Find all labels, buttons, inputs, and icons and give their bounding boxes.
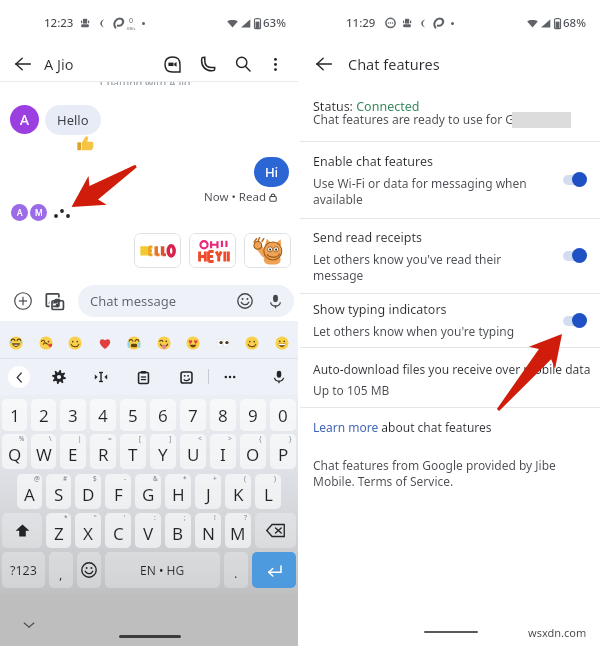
- button[interactable]: 7: [180, 399, 206, 431]
- staticText: #: [63, 474, 68, 483]
- button[interactable]: 3: [60, 399, 86, 431]
- button[interactable]: Clipboard: [133, 367, 153, 387]
- staticText: ?: [244, 513, 247, 522]
- button[interactable]: (: [225, 474, 251, 509]
- button[interactable]: A Jio: [44, 54, 74, 74]
- staticText: KB/s: [127, 26, 136, 31]
- button[interactable]: Text editing: [91, 367, 111, 387]
- button[interactable]: [: [120, 434, 146, 469]
- button[interactable]: >: [210, 434, 236, 469]
- button[interactable]: 1: [2, 399, 27, 431]
- button[interactable]: Chat message: [90, 285, 284, 317]
- button[interactable]: {: [240, 434, 266, 469]
- staticText: N: [202, 522, 215, 545]
- button[interactable]: More options: [261, 50, 289, 78]
- staticText: Auto-download files you receive over mob…: [313, 361, 591, 377]
- button[interactable]: -: [105, 474, 131, 509]
- button[interactable]: Gallery: [45, 292, 64, 311]
- button[interactable]: Emoji: [127, 336, 141, 350]
- button[interactable]: ': [105, 513, 131, 548]
- button[interactable]: Hide keyboard: [21, 617, 37, 633]
- button[interactable]: Hi: [265, 157, 278, 187]
- staticText: ": [94, 513, 97, 522]
- button[interactable]: EN • HG: [105, 552, 220, 588]
- button[interactable]: Emoji: [98, 336, 112, 350]
- button[interactable]: :: [135, 513, 161, 548]
- button[interactable]: %: [2, 434, 27, 469]
- staticText: (: [244, 474, 246, 483]
- button[interactable]: Emoji: [216, 336, 230, 350]
- button[interactable]: Voice input: [269, 367, 289, 387]
- button[interactable]: More: [220, 367, 240, 387]
- button[interactable]: Auto-download files you receive over mob…: [300, 347, 600, 407]
- button[interactable]: Settings: [49, 367, 69, 387]
- button[interactable]: Send read receipts: [300, 218, 600, 293]
- button[interactable]: Enable chat features: [300, 141, 600, 218]
- button[interactable]: Search: [229, 50, 257, 78]
- button[interactable]: Learn more about chat features: [300, 407, 600, 437]
- staticText: 7: [188, 404, 198, 427]
- staticText: Mobile. Terms of Service.: [313, 473, 454, 489]
- button[interactable]: =: [90, 434, 116, 469]
- staticText: *: [183, 474, 187, 483]
- button[interactable]: 8: [210, 399, 236, 431]
- button[interactable]: Emoji: [157, 336, 171, 350]
- button[interactable]: |: [60, 434, 86, 469]
- button[interactable]: Sticker: [134, 233, 181, 268]
- button[interactable]: 2: [31, 399, 56, 431]
- button[interactable]: <: [180, 434, 206, 469]
- button[interactable]: Emoji: [186, 336, 200, 350]
- button[interactable]: &: [135, 474, 161, 509]
- button[interactable]: Emoji: [236, 292, 254, 310]
- button[interactable]: Collapse toolbar: [8, 366, 30, 388]
- button[interactable]: !: [195, 513, 221, 548]
- button[interactable]: @: [17, 474, 42, 509]
- button[interactable]: Toggle: [563, 248, 587, 263]
- button[interactable]: *: [165, 474, 191, 509]
- staticText: =: [108, 434, 112, 443]
- button[interactable]: Backspace: [255, 513, 296, 548]
- button[interactable]: ": [75, 513, 101, 548]
- button[interactable]: 4: [90, 399, 116, 431]
- staticText: I: [220, 443, 226, 466]
- button[interactable]: ,: [49, 552, 73, 588]
- button[interactable]: Toggle: [563, 172, 587, 187]
- button[interactable]: \: [31, 434, 56, 469]
- button[interactable]: Shift: [2, 513, 42, 548]
- button[interactable]: }: [270, 434, 296, 469]
- button[interactable]: +: [195, 474, 221, 509]
- button[interactable]: ;: [165, 513, 191, 548]
- button[interactable]: Emoji: [39, 336, 53, 350]
- button[interactable]: ]: [150, 434, 176, 469]
- button[interactable]: Call: [194, 50, 222, 78]
- button[interactable]: *: [46, 513, 71, 548]
- button[interactable]: 6: [150, 399, 176, 431]
- button[interactable]: Emoji: [275, 336, 289, 350]
- button[interactable]: .: [224, 552, 248, 588]
- button[interactable]: ?: [225, 513, 251, 548]
- button[interactable]: 5: [120, 399, 146, 431]
- button[interactable]: Hello: [57, 105, 89, 135]
- button[interactable]: Add: [14, 292, 32, 310]
- button[interactable]: Stickers: [176, 367, 196, 387]
- button[interactable]: Video call: [158, 50, 186, 78]
- button[interactable]: Back: [10, 51, 36, 77]
- button[interactable]: 0: [270, 399, 296, 431]
- button[interactable]: $: [75, 474, 101, 509]
- button[interactable]: Sticker: [244, 233, 291, 268]
- button[interactable]: Toggle: [563, 313, 587, 328]
- button[interactable]: #: [46, 474, 71, 509]
- button[interactable]: Emoji: [68, 336, 82, 350]
- button[interactable]: Show typing indicators: [300, 293, 600, 347]
- button[interactable]: ?123: [2, 552, 45, 588]
- staticText: 0: [129, 16, 134, 26]
- button[interactable]: Back: [311, 51, 337, 77]
- button[interactable]: ): [255, 474, 281, 509]
- button[interactable]: Emoji: [9, 336, 23, 350]
- button[interactable]: Enter: [252, 552, 296, 588]
- button[interactable]: Emoji: [245, 336, 259, 350]
- button[interactable]: Emoji keyboard: [77, 552, 101, 588]
- button[interactable]: Sticker: [189, 233, 236, 268]
- button[interactable]: Voice message: [266, 292, 284, 310]
- button[interactable]: 9: [240, 399, 266, 431]
